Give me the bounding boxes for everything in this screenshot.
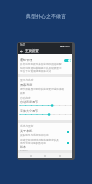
staticText: 调节屏幕显示明暗以获得更舒适的体验	[20, 87, 65, 90]
button[interactable]: Back	[20, 48, 70, 54]
staticText: 显示与亮度	[20, 78, 34, 81]
staticText: 主页设置	[25, 49, 39, 53]
staticText: 关于本机	[20, 129, 33, 133]
other: Back	[20, 50, 23, 53]
button[interactable]: Home	[43, 154, 47, 158]
staticText: 字体大小调节	[20, 109, 38, 113]
staticText: 存储空间使用情况电池健康度以及	[20, 138, 59, 141]
staticText: 可在下方逐项调整具体方式	[20, 69, 52, 72]
button[interactable]: Slider	[20, 113, 71, 116]
button[interactable]: Back	[29, 154, 33, 158]
staticText: 系统与更新	[20, 124, 34, 127]
staticText: 效果	[20, 91, 26, 94]
staticText: 典型扑心之不做言	[26, 13, 66, 19]
staticText: 版本	[20, 145, 26, 149]
button[interactable]: Slider	[20, 104, 71, 107]
staticText: 设备型号与系统版本信息	[20, 133, 49, 136]
staticText: 自动亮度	[20, 96, 31, 99]
staticText: 自动亮度调节	[20, 100, 38, 104]
staticText: V 3.2.1	[20, 148, 28, 151]
staticText: 开启后您将收到来自应用的推送提醒	[20, 62, 62, 65]
staticText: 序列号等详细参数信息	[20, 141, 46, 144]
staticText: ▬▬ 88%	[60, 44, 70, 47]
staticText: 屏幕亮度	[20, 83, 33, 87]
staticText: 包括消息通知横幅提示以及锁屏显示	[20, 66, 62, 69]
button[interactable]: Toggle notifications	[64, 59, 71, 62]
button[interactable]: Recents	[58, 154, 62, 158]
staticText: 通知管理	[20, 58, 33, 62]
staticText: 9:41	[20, 43, 26, 47]
